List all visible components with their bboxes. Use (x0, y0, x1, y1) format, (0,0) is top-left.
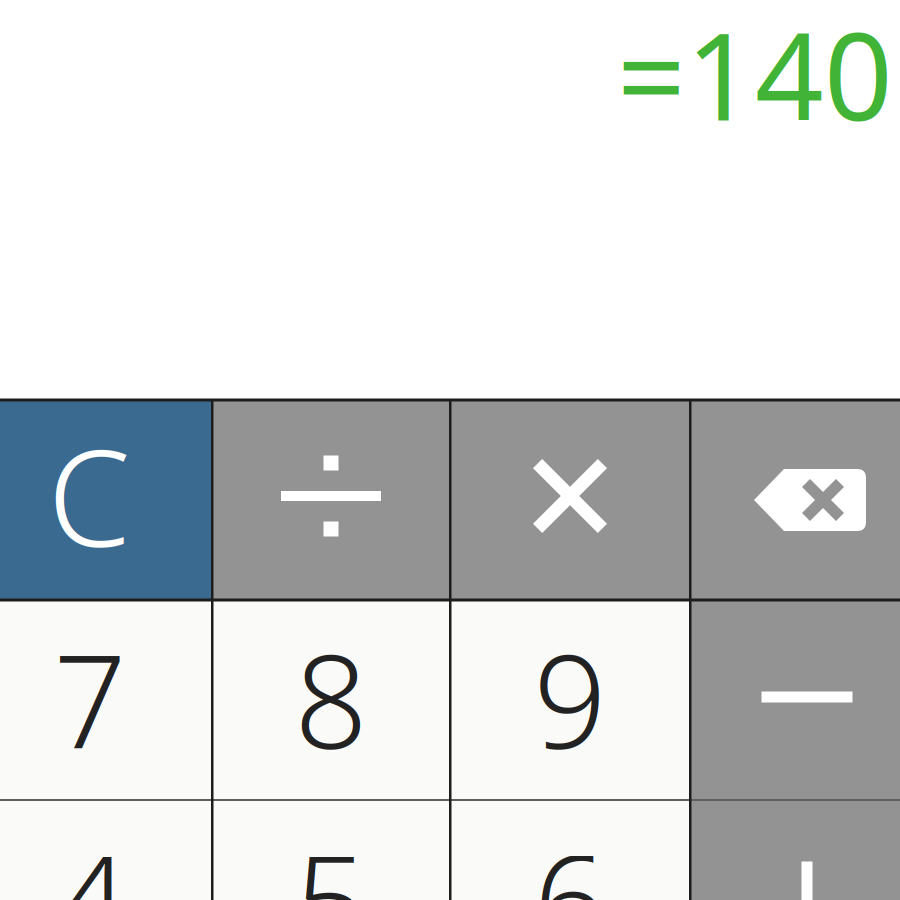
button[interactable]: Multiply (450, 400, 690, 600)
button[interactable]: 6 (450, 800, 690, 900)
staticText: 8 (294, 614, 367, 784)
button[interactable]: 7 (0, 600, 212, 800)
staticText: 9 (533, 614, 606, 784)
staticText: 7 (53, 614, 126, 784)
button[interactable]: Divide (212, 400, 450, 600)
button[interactable]: 9 (450, 600, 690, 800)
staticText: C (47, 406, 130, 584)
button[interactable]: 5 (212, 800, 450, 900)
button[interactable]: Clear (0, 400, 212, 600)
staticText: 4 (55, 814, 128, 900)
staticText: 6 (533, 814, 606, 900)
button[interactable]: Delete (690, 400, 900, 600)
staticText: 5 (294, 814, 367, 900)
button[interactable]: Plus (690, 800, 900, 900)
button[interactable]: Minus (690, 600, 900, 800)
staticText: =140 (617, 0, 893, 154)
button[interactable]: 8 (212, 600, 450, 800)
button[interactable]: 4 (0, 800, 212, 900)
button[interactable]: Result 140 (23, 14, 893, 134)
